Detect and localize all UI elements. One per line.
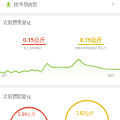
staticText: 近期體脂變化 [3,93,32,99]
staticText: 近期體重變化 [3,19,32,25]
staticText: 0.15公斤 [80,36,102,44]
staticText: 標準肌肉型 [14,1,38,7]
button[interactable]: 標準肌肉型 [0,0,120,13]
staticText: 距離目標體重還差1.65公斤 [75,46,107,50]
staticText: 0.64公斤 [18,111,36,117]
staticText: 8/31 [108,74,115,78]
other: 更多 [111,2,115,6]
staticText: 較上次測量減少 [24,46,43,49]
staticText: 0.15公斤 [23,36,45,44]
staticText: 1.62公斤 [76,110,94,116]
staticText: 3/1 [2,74,7,78]
